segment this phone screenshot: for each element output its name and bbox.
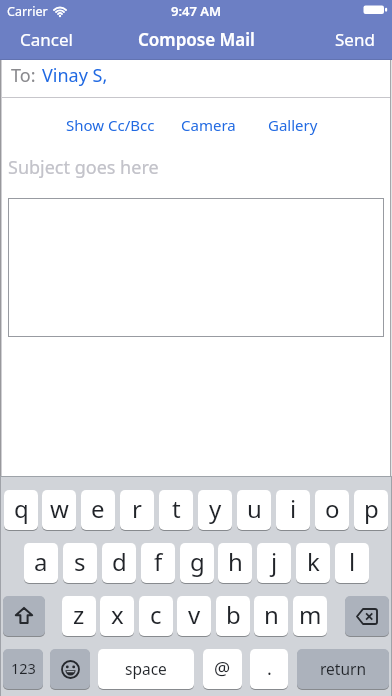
staticText: t — [172, 492, 181, 525]
staticText: 9:47 AM — [171, 2, 222, 20]
staticText: y — [209, 492, 222, 525]
staticText: 123 — [11, 658, 36, 678]
button[interactable]: d — [102, 543, 136, 583]
staticText: r — [132, 492, 142, 525]
staticText: Show Cc/Bcc — [66, 115, 155, 135]
button[interactable]: p — [354, 490, 388, 530]
button[interactable]: s — [63, 543, 97, 583]
staticText: c — [150, 598, 162, 631]
button[interactable]: To: — [0, 60, 392, 97]
staticText: v — [188, 598, 201, 631]
button[interactable]: a — [24, 543, 58, 583]
button[interactable]: h — [218, 543, 252, 583]
button[interactable]: 123 — [3, 649, 43, 689]
button[interactable] — [8, 198, 384, 337]
button[interactable]: c — [139, 596, 173, 636]
button[interactable]: j — [257, 543, 291, 583]
button[interactable]: w — [42, 490, 76, 530]
staticText: b — [226, 598, 241, 631]
staticText: z — [73, 598, 85, 631]
button[interactable]: @ — [203, 649, 242, 689]
button[interactable]: f — [141, 543, 175, 583]
staticText: u — [247, 492, 262, 525]
button[interactable]: Cancel — [6, 22, 86, 56]
staticText: e — [91, 492, 105, 525]
staticText: Subject goes here — [8, 155, 159, 180]
staticText: m — [299, 598, 322, 631]
staticText: x — [111, 598, 124, 631]
staticText: q — [14, 492, 29, 525]
staticText: f — [154, 545, 163, 578]
button[interactable]: u — [237, 490, 271, 530]
button[interactable]: Send — [320, 22, 390, 56]
staticText: space — [125, 658, 167, 679]
button[interactable]: Gallery — [233, 110, 353, 140]
button[interactable]: k — [296, 543, 330, 583]
button[interactable]: o — [315, 490, 349, 530]
staticText: Send — [335, 28, 375, 51]
button[interactable]: i — [276, 490, 310, 530]
button[interactable]: Show Cc/Bcc — [50, 110, 170, 140]
staticText: w — [50, 492, 69, 525]
staticText: To: — [11, 63, 36, 88]
button[interactable]: x — [100, 596, 134, 636]
staticText: Carrier — [7, 3, 48, 20]
staticText: i — [290, 492, 297, 525]
staticText: return — [320, 658, 366, 679]
button[interactable]: space — [98, 649, 194, 689]
button[interactable]: . — [250, 649, 288, 689]
button[interactable]: l — [335, 543, 369, 583]
button[interactable]: z — [62, 596, 96, 636]
button[interactable]: g — [180, 543, 214, 583]
staticText: Vinay S, — [42, 63, 108, 88]
button[interactable] — [3, 596, 45, 636]
staticText: @ — [214, 656, 231, 681]
button[interactable] — [50, 649, 90, 689]
staticText: Gallery — [268, 115, 318, 135]
button[interactable]: Subject goes here — [0, 150, 392, 188]
staticText: d — [112, 545, 127, 578]
staticText: n — [264, 598, 279, 631]
staticText: Cancel — [20, 28, 73, 51]
button[interactable]: v — [177, 596, 211, 636]
button[interactable]: q — [4, 490, 38, 530]
button[interactable]: return — [297, 649, 389, 689]
staticText: g — [190, 545, 205, 578]
staticText: k — [307, 545, 320, 578]
staticText: s — [74, 545, 86, 578]
staticText: j — [271, 545, 278, 578]
button[interactable]: n — [254, 596, 288, 636]
staticText: h — [228, 545, 243, 578]
button[interactable]: e — [81, 490, 115, 530]
staticText: Compose Mail — [138, 28, 255, 51]
button[interactable]: t — [159, 490, 193, 530]
button[interactable] — [345, 596, 389, 636]
button[interactable]: m — [293, 596, 327, 636]
button[interactable]: b — [216, 596, 250, 636]
staticText: . — [267, 656, 272, 681]
button[interactable]: y — [198, 490, 232, 530]
button[interactable]: Camera — [148, 110, 268, 140]
button[interactable]: r — [120, 490, 154, 530]
staticText: l — [349, 545, 356, 578]
staticText: o — [325, 492, 340, 525]
staticText: p — [364, 492, 379, 525]
staticText: Camera — [181, 115, 236, 135]
staticText: a — [34, 545, 48, 578]
